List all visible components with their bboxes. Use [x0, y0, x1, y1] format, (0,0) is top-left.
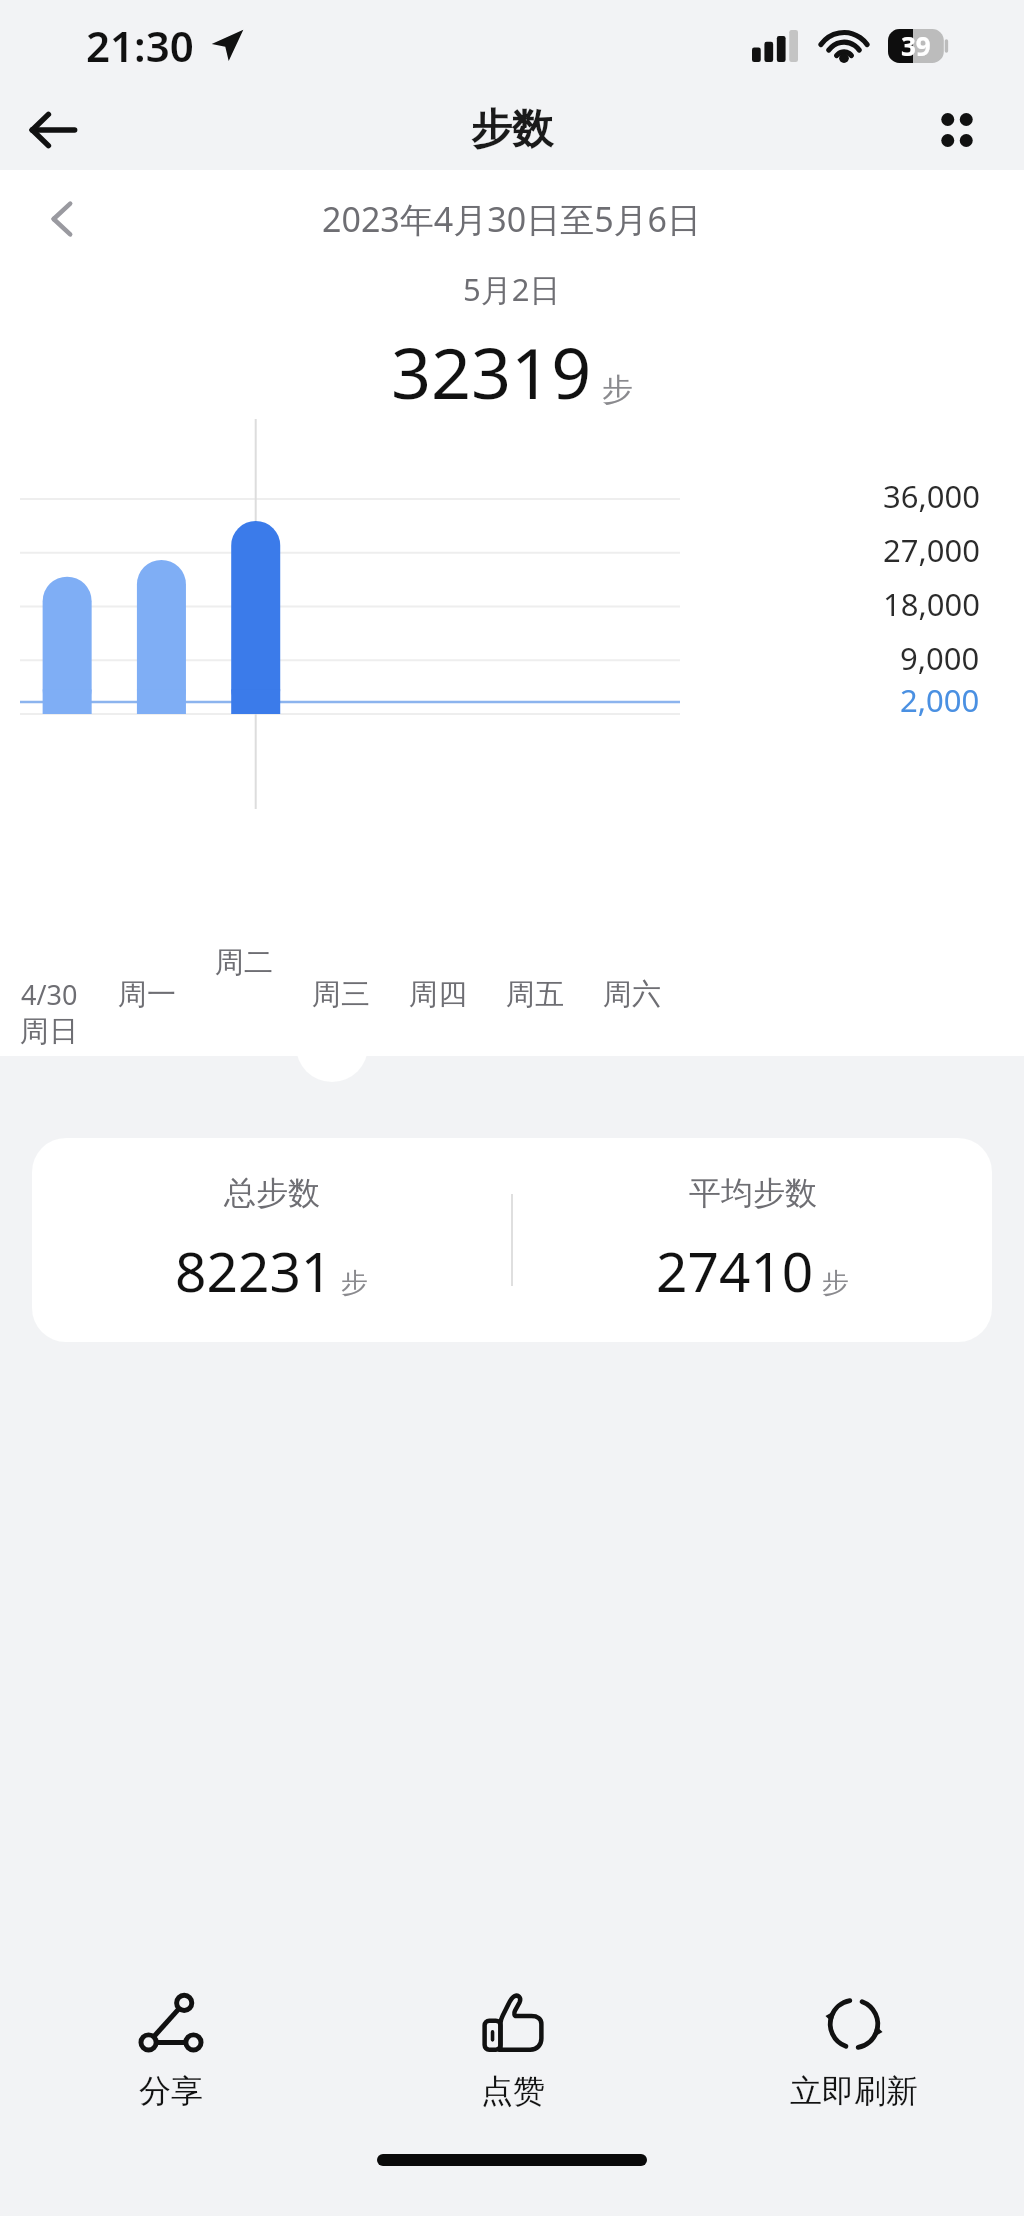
button[interactable]: 平均步数 [513, 1138, 992, 1342]
staticText: 9,000 [900, 637, 980, 679]
staticText: 周六 [603, 976, 661, 1013]
staticText: 18,000 [883, 583, 980, 625]
button[interactable]: Back [8, 90, 98, 170]
staticText: 5月2日 [463, 268, 561, 310]
button[interactable]: 分享 [0, 1966, 342, 2136]
staticText: 4/30 [21, 976, 78, 1013]
staticText: 步数 [471, 104, 553, 156]
staticText: 36,000 [883, 475, 980, 517]
staticText: 2,000 [900, 679, 980, 721]
staticText: 21:30 [86, 17, 194, 74]
staticText: 周一 [118, 976, 176, 1013]
staticText: 步 [822, 1266, 849, 1300]
staticText: 平均步数 [689, 1173, 817, 1213]
button[interactable]: 总步数 [32, 1138, 511, 1342]
button[interactable]: Previous week [26, 182, 100, 256]
staticText: 27,000 [883, 529, 980, 571]
staticText: 2023年4月30日至5月6日 [322, 196, 702, 242]
staticText: 分享 [139, 2071, 203, 2111]
staticText: 步 [341, 1266, 368, 1300]
staticText: 周日 [20, 1013, 78, 1050]
button[interactable]: 点赞 [342, 1966, 683, 2136]
button[interactable]: Scrub chart [296, 1010, 368, 1082]
staticText: 周三 [312, 976, 370, 1013]
staticText: 27410 [656, 1233, 814, 1308]
staticText: 点赞 [481, 2071, 545, 2111]
staticText: 39 [901, 28, 931, 63]
staticText: 32319 [391, 324, 592, 419]
staticText: 周二 [215, 944, 273, 981]
staticText: 立即刷新 [790, 2071, 918, 2111]
staticText: 周五 [506, 976, 564, 1013]
button[interactable]: More options [912, 90, 1002, 170]
staticText: 步 [602, 370, 633, 409]
button[interactable]: 立即刷新 [683, 1966, 1024, 2136]
staticText: 周四 [409, 976, 467, 1013]
staticText: 82231 [175, 1233, 333, 1308]
staticText: 总步数 [224, 1173, 320, 1213]
